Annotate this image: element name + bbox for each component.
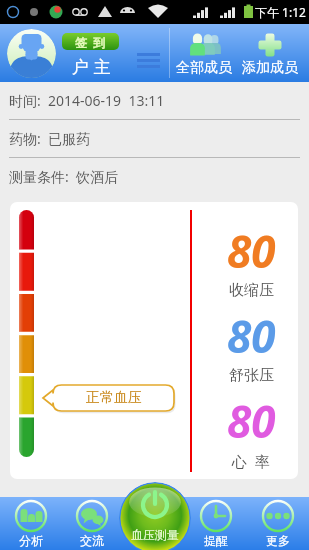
button[interactable]: 交流 [61, 497, 123, 550]
staticText: 血压测量 [131, 527, 179, 542]
button[interactable]: Menu [136, 53, 162, 69]
button[interactable]: Profile [7, 29, 56, 78]
button[interactable]: 血压测量 [119, 482, 191, 550]
staticText: 药物: 已服药 [9, 129, 91, 148]
staticText: 更多 [266, 533, 290, 548]
staticText: 80 [227, 221, 276, 281]
staticText: 80 [227, 306, 276, 366]
staticText: 时间: 2014-06-19 13:11 [9, 91, 165, 110]
staticText: 签 到 [75, 34, 106, 50]
button[interactable]: 分析 [0, 497, 61, 550]
staticText: 收缩压 [229, 281, 274, 300]
button[interactable]: 全部成员 [174, 31, 234, 77]
staticText: 交流 [80, 533, 104, 548]
staticText: 全部成员 [176, 59, 232, 77]
staticText: 80 [227, 391, 276, 451]
staticText: 正常血压 [86, 389, 142, 407]
button[interactable]: 签 到 [62, 33, 119, 50]
staticText: 提醒 [204, 533, 228, 548]
button[interactable]: 添加成员 [240, 31, 300, 77]
button[interactable]: 提醒 [185, 497, 247, 550]
staticText: 下午 1:12 [255, 4, 306, 20]
staticText: 心 率 [232, 451, 270, 471]
staticText: 添加成员 [242, 59, 298, 77]
staticText: 舒张压 [229, 366, 274, 385]
button[interactable]: 更多 [247, 497, 309, 550]
staticText: 户 主 [72, 55, 111, 78]
staticText: 分析 [19, 533, 43, 548]
staticText: 测量条件: 饮酒后 [9, 167, 119, 186]
